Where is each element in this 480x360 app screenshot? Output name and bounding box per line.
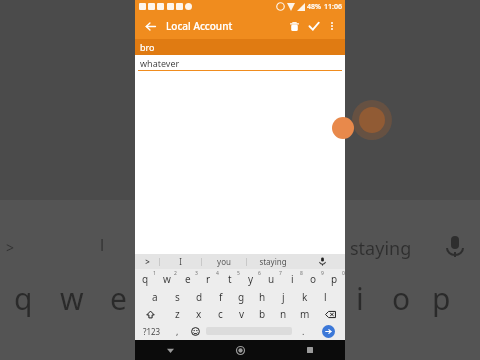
staticText: . bbox=[302, 325, 305, 337]
staticText: l bbox=[324, 290, 327, 304]
button[interactable]: you bbox=[202, 254, 246, 269]
button[interactable]: Save bbox=[304, 16, 324, 36]
button[interactable]: t bbox=[219, 271, 240, 286]
staticText: 3 bbox=[195, 270, 198, 277]
staticText: 48% bbox=[307, 2, 321, 12]
button[interactable]: m bbox=[294, 307, 315, 321]
staticText: g bbox=[238, 290, 245, 304]
button[interactable]: a bbox=[144, 289, 166, 304]
staticText: b bbox=[259, 307, 266, 321]
button[interactable]: Add bbox=[332, 117, 354, 139]
staticText: o bbox=[310, 272, 317, 286]
button[interactable]: s bbox=[166, 289, 188, 304]
staticText: z bbox=[175, 307, 180, 321]
button[interactable]: Delete bbox=[284, 16, 304, 36]
staticText: f bbox=[219, 290, 223, 304]
button[interactable]: d bbox=[188, 289, 210, 304]
staticText: 8 bbox=[300, 270, 303, 277]
staticText: t bbox=[228, 272, 232, 286]
button[interactable]: , bbox=[168, 324, 186, 338]
staticText: e bbox=[110, 278, 127, 319]
button[interactable]: i bbox=[282, 271, 303, 286]
button[interactable]: k bbox=[294, 289, 315, 304]
staticText: w bbox=[60, 278, 84, 319]
staticText: 6 bbox=[258, 270, 261, 277]
staticText: 2 bbox=[174, 270, 177, 277]
staticText: you bbox=[217, 256, 231, 267]
button[interactable]: staying bbox=[247, 254, 299, 269]
staticText: staying bbox=[259, 256, 287, 267]
button[interactable]: f bbox=[210, 289, 231, 304]
staticText: o bbox=[392, 278, 411, 319]
staticText: > bbox=[6, 238, 15, 257]
button[interactable]: Recent apps bbox=[275, 340, 345, 360]
staticText: bro bbox=[140, 41, 155, 53]
button[interactable]: c bbox=[210, 307, 231, 321]
staticText: p bbox=[432, 278, 451, 319]
staticText: m bbox=[300, 307, 310, 321]
staticText: v bbox=[239, 307, 245, 321]
staticText: I bbox=[179, 256, 182, 267]
staticText: q bbox=[142, 272, 149, 286]
button[interactable]: > bbox=[135, 254, 159, 269]
staticText: r bbox=[206, 272, 211, 286]
button[interactable]: o bbox=[303, 271, 324, 286]
button[interactable]: Back bbox=[135, 340, 205, 360]
button[interactable]: whatever bbox=[135, 55, 345, 70]
staticText: ?123 bbox=[143, 326, 161, 337]
button[interactable]: u bbox=[261, 271, 282, 286]
staticText: i bbox=[356, 278, 364, 319]
staticText: 9 bbox=[321, 270, 324, 277]
button[interactable]: Voice input bbox=[299, 254, 345, 269]
staticText: whatever bbox=[140, 57, 180, 69]
button[interactable]: w bbox=[156, 271, 177, 286]
staticText: p bbox=[331, 272, 338, 286]
staticText: k bbox=[302, 290, 308, 304]
button[interactable]: j bbox=[273, 289, 294, 304]
button[interactable]: h bbox=[252, 289, 273, 304]
button[interactable]: z bbox=[166, 307, 188, 321]
staticText: 11:06 bbox=[324, 2, 342, 12]
staticText: a bbox=[152, 290, 158, 304]
button[interactable]: l bbox=[315, 289, 336, 304]
staticText: Local Account bbox=[166, 19, 233, 33]
staticText: j bbox=[282, 290, 285, 304]
staticText: w bbox=[163, 272, 171, 286]
button[interactable]: x bbox=[188, 307, 210, 321]
button[interactable]: e bbox=[177, 271, 198, 286]
button[interactable]: bro bbox=[135, 39, 345, 55]
staticText: staying bbox=[350, 236, 412, 261]
button[interactable]: Backspace bbox=[315, 307, 345, 321]
staticText: l bbox=[100, 234, 105, 256]
button[interactable]: n bbox=[273, 307, 294, 321]
button[interactable]: Shift bbox=[135, 307, 166, 321]
staticText: q bbox=[14, 278, 33, 319]
button[interactable]: v bbox=[231, 307, 252, 321]
staticText: x bbox=[196, 307, 202, 321]
button[interactable]: p bbox=[324, 271, 345, 286]
button[interactable]: g bbox=[231, 289, 252, 304]
staticText: n bbox=[280, 307, 287, 321]
staticText: u bbox=[268, 272, 275, 286]
staticText: 7 bbox=[279, 270, 282, 277]
button[interactable]: . bbox=[294, 324, 312, 338]
button[interactable]: Emoji bbox=[186, 324, 204, 338]
button[interactable]: y bbox=[240, 271, 261, 286]
staticText: 0 bbox=[342, 270, 345, 277]
button[interactable]: Enter bbox=[322, 325, 335, 338]
staticText: d bbox=[196, 290, 203, 304]
staticText: y bbox=[248, 272, 254, 286]
button[interactable]: r bbox=[198, 271, 219, 286]
button[interactable]: ?123 bbox=[135, 324, 168, 338]
staticText: 5 bbox=[237, 270, 240, 277]
button[interactable]: More options bbox=[324, 18, 340, 34]
staticText: 1 bbox=[153, 270, 156, 277]
button[interactable]: Home bbox=[205, 340, 275, 360]
staticText: , bbox=[176, 325, 179, 337]
staticText: 4 bbox=[216, 270, 219, 277]
button[interactable]: Back bbox=[140, 16, 160, 36]
button[interactable]: q bbox=[135, 271, 156, 286]
button[interactable]: I bbox=[160, 254, 201, 269]
button[interactable]: b bbox=[252, 307, 273, 321]
